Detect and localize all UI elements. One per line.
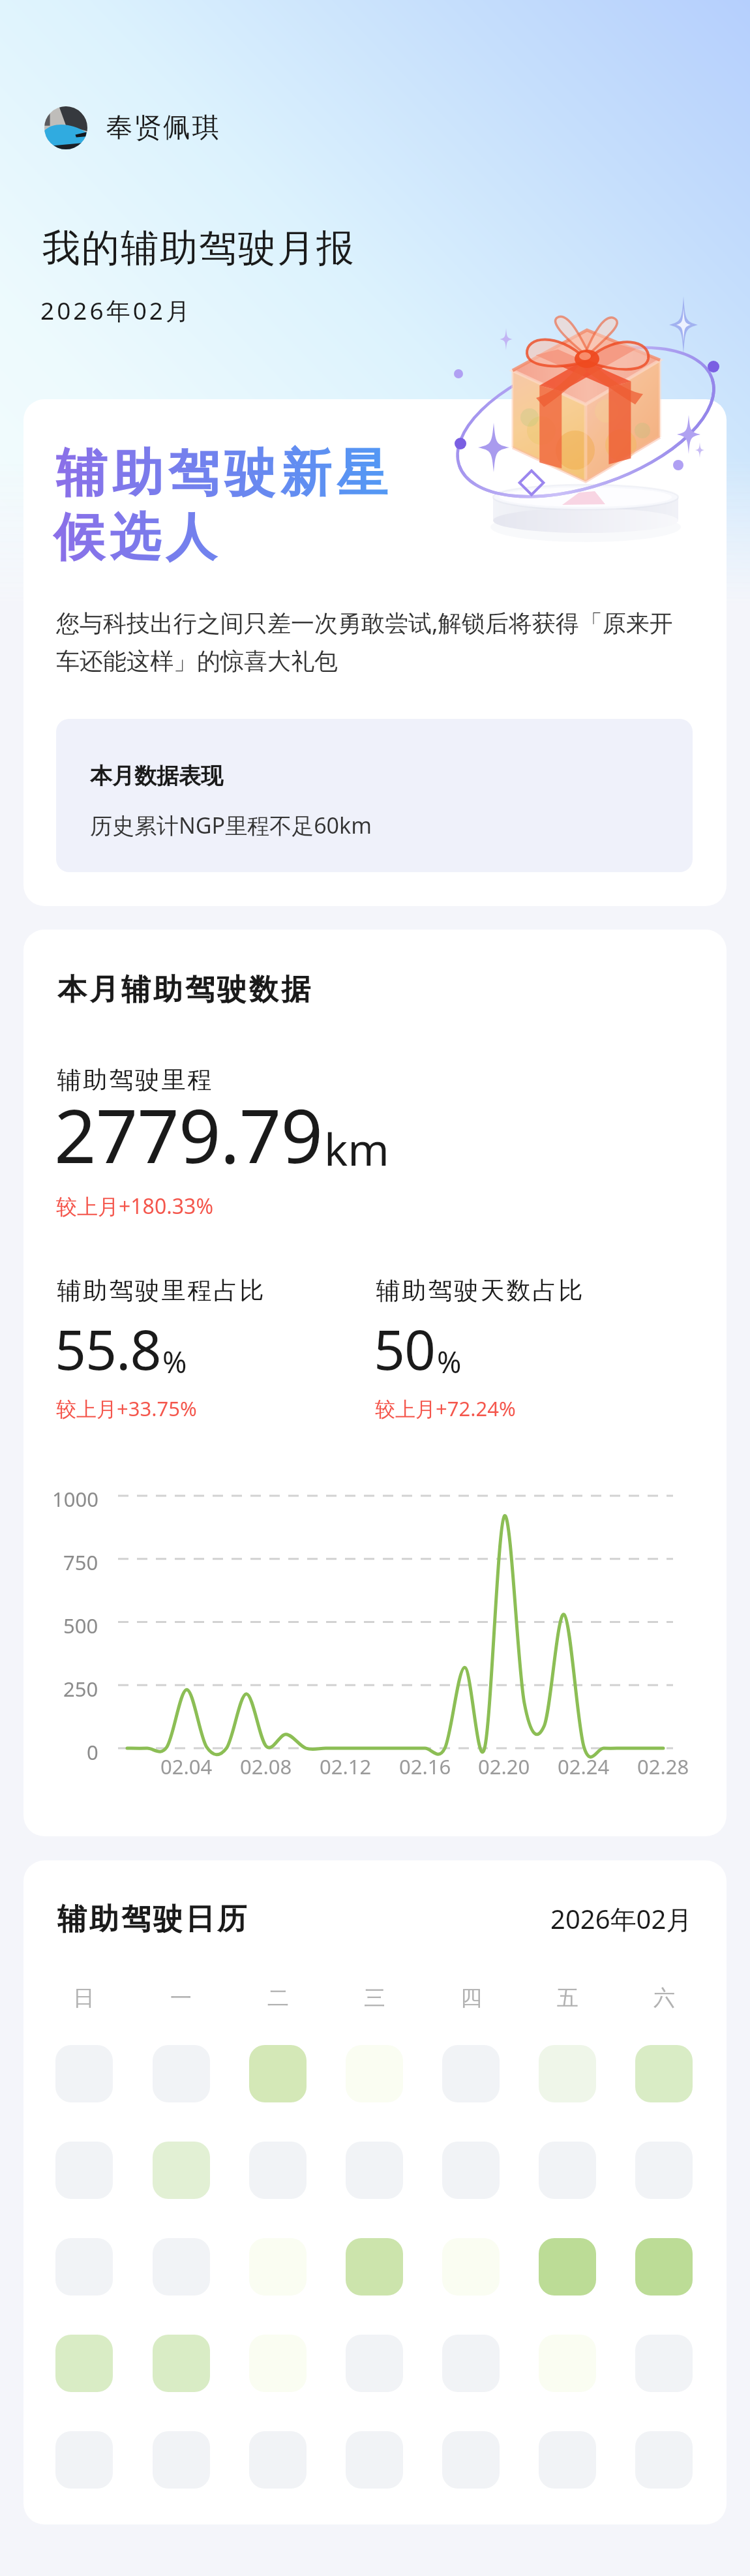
staticText: 02.08	[240, 1753, 292, 1780]
staticText: 四	[460, 1984, 482, 2012]
staticText: 250	[63, 1675, 98, 1703]
staticText: 1000	[52, 1485, 98, 1513]
staticText: %	[162, 1342, 187, 1382]
staticText: 日	[73, 1984, 95, 2012]
staticText: 二	[267, 1984, 289, 2012]
staticText: 本月数据表现	[90, 762, 223, 790]
staticText: 历史累计NGP里程不足60km	[90, 810, 372, 840]
staticText: 较上月+180.33%	[56, 1192, 213, 1220]
staticText: 较上月+33.75%	[56, 1395, 197, 1422]
staticText: 2779.79	[54, 1084, 323, 1185]
staticText: 750	[63, 1549, 98, 1576]
staticText: 辅助驾驶里程	[56, 1065, 213, 1095]
staticText: 02.20	[478, 1753, 530, 1780]
staticText: 500	[63, 1612, 98, 1639]
staticText: 2026年02月	[550, 1901, 693, 1937]
button[interactable]: 奉贤佩琪	[44, 106, 220, 149]
staticText: 辅助驾驶新星 候选人	[53, 442, 390, 569]
staticText: 0	[87, 1738, 98, 1766]
staticText: 较上月+72.24%	[375, 1395, 516, 1422]
staticText: 02.16	[399, 1753, 451, 1780]
staticText: 我的辅助驾驶月报	[42, 224, 355, 272]
staticText: 55.8	[55, 1311, 161, 1386]
staticText: %	[437, 1342, 462, 1382]
staticText: 本月辅助驾驶数据	[56, 971, 312, 1008]
staticText: 辅助驾驶里程占比	[56, 1275, 265, 1306]
staticText: 一	[170, 1984, 192, 2012]
staticText: 02.04	[160, 1753, 213, 1780]
staticText: 50	[374, 1311, 436, 1386]
staticText: 三	[364, 1984, 385, 2012]
staticText: 02.28	[637, 1753, 689, 1780]
staticText: 六	[653, 1984, 675, 2012]
staticText: 辅助驾驶天数占比	[375, 1275, 584, 1306]
staticText: 奉贤佩琪	[105, 111, 220, 145]
staticText: 辅助驾驶日历	[56, 1901, 248, 1938]
staticText: 02.24	[558, 1753, 610, 1780]
staticText: km	[324, 1118, 389, 1179]
staticText: 五	[557, 1984, 578, 2012]
staticText: 2026年02月	[40, 294, 192, 327]
staticText: 02.12	[320, 1753, 372, 1780]
staticText: 您与科技出行之间只差一次勇敢尝试,解锁后将获得「原来开 车还能这样」的惊喜大礼包	[56, 607, 702, 676]
